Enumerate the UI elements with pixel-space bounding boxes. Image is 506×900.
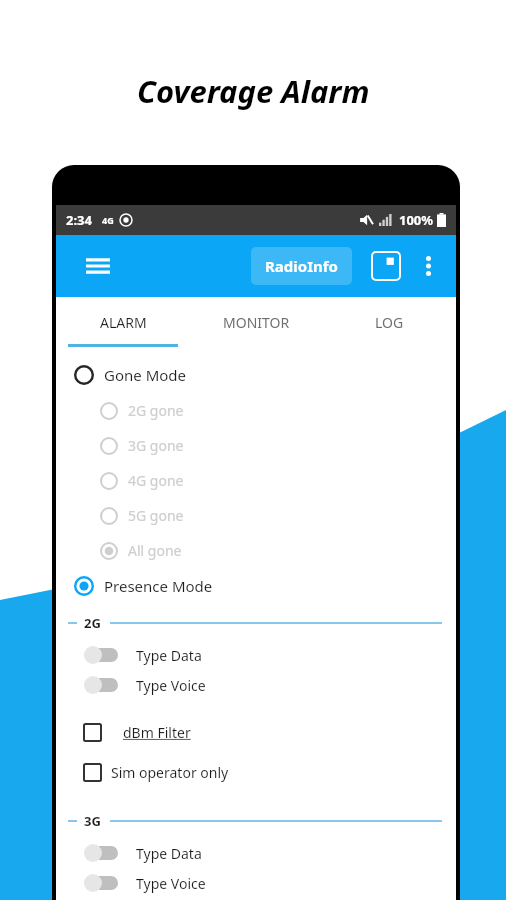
staticText: 4G (102, 214, 114, 226)
staticText: 2G (84, 614, 101, 632)
staticText: 4G gone (128, 471, 184, 490)
staticText: 3G gone (128, 436, 184, 455)
button[interactable]: Toggle window (370, 250, 402, 282)
staticText: LOG (375, 313, 404, 332)
button[interactable]: LOG (323, 297, 456, 347)
staticText: dBm Filter (123, 723, 191, 742)
button[interactable]: dBm Filter (56, 712, 456, 752)
button[interactable]: Gone Mode (56, 357, 456, 393)
staticText: Type Data (136, 646, 202, 665)
staticText: 2:34 (66, 211, 92, 229)
staticText: 2G gone (128, 401, 184, 420)
staticText: RadioInfo (265, 256, 338, 276)
button[interactable]: ALARM (56, 297, 190, 347)
staticText: Sim operator only (111, 763, 229, 782)
button[interactable]: 5G gone (56, 498, 456, 533)
staticText: ALARM (100, 313, 147, 332)
button[interactable]: 2G gone (56, 393, 456, 428)
button[interactable]: Type Data (56, 838, 456, 868)
staticText: 100% (399, 211, 434, 229)
button[interactable]: Menu (80, 248, 116, 284)
button[interactable]: RadioInfo (251, 247, 352, 285)
staticText: Gone Mode (104, 365, 186, 385)
staticText: MONITOR (223, 313, 290, 332)
staticText: Presence Mode (104, 576, 213, 596)
button[interactable]: Type Data (56, 640, 456, 670)
staticText: 3G (84, 812, 101, 830)
staticText: Type Data (136, 844, 202, 863)
button[interactable]: Presence Mode (56, 568, 456, 604)
button[interactable]: More options (410, 248, 446, 284)
staticText: 5G gone (128, 506, 184, 525)
button[interactable]: Sim operator only (56, 752, 456, 792)
button[interactable]: Type Voice (56, 868, 456, 898)
button[interactable]: Type Voice (56, 670, 456, 700)
button[interactable]: 4G gone (56, 463, 456, 498)
button[interactable]: 3G gone (56, 428, 456, 463)
staticText: Type Voice (136, 676, 206, 695)
staticText: Type Voice (136, 874, 206, 893)
staticText: All gone (128, 541, 182, 560)
staticText: Coverage Alarm (137, 70, 370, 112)
button[interactable]: All gone (56, 533, 456, 568)
button[interactable]: MONITOR (190, 297, 323, 347)
